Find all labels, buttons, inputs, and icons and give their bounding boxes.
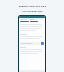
staticText: No Personal Info Needed — [18, 9, 47, 12]
button[interactable]: App bar — [19, 16, 45, 18]
button[interactable]: App bar — [19, 16, 45, 72]
button[interactable]: Continue — [41, 42, 44, 45]
button[interactable] — [20, 42, 40, 45]
staticText: Register With Gov Click — [17, 4, 48, 7]
